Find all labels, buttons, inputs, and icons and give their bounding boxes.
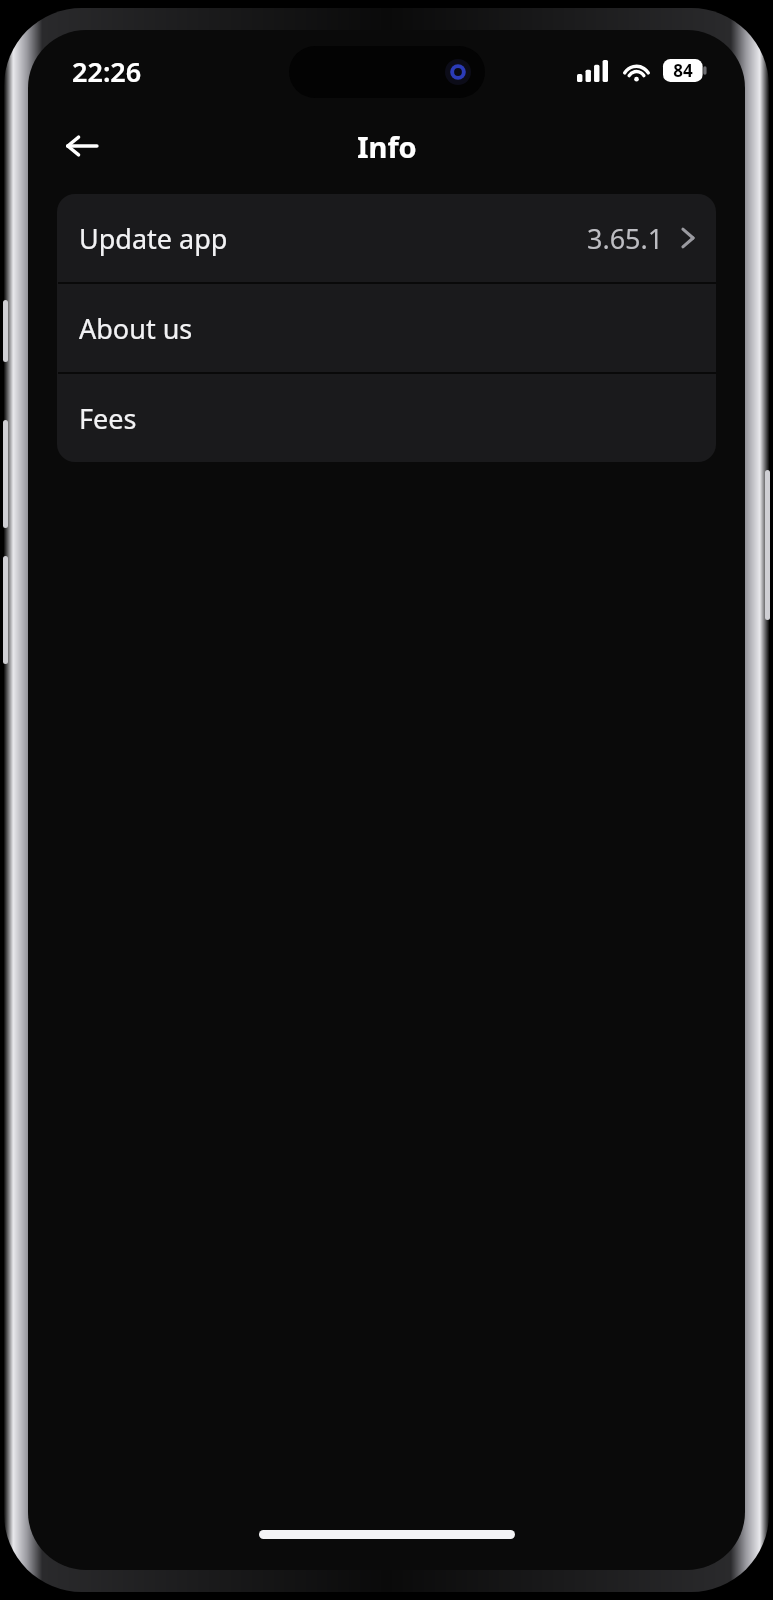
staticText: 84 — [663, 59, 703, 82]
staticText: Update app — [79, 220, 228, 257]
staticText: About us — [79, 310, 193, 347]
staticText: 3.65.1 — [587, 220, 664, 257]
staticText: Fees — [79, 400, 137, 437]
button[interactable]: About us — [57, 284, 716, 372]
staticText: Info — [357, 127, 417, 166]
button[interactable]: Fees — [57, 374, 716, 462]
button[interactable]: Update app — [57, 194, 716, 282]
button[interactable]: Back — [54, 118, 110, 174]
staticText: 22:26 — [72, 53, 142, 90]
